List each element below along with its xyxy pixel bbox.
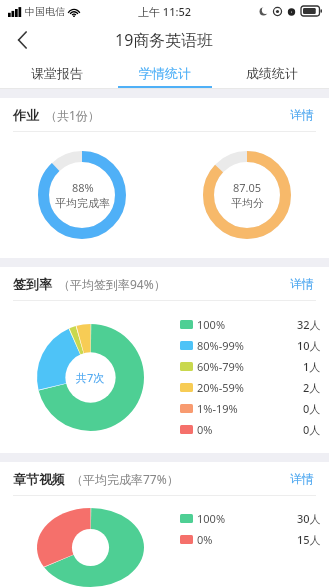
staticText: （共1份）	[45, 107, 100, 123]
staticText: 详情	[290, 276, 314, 291]
staticText: 课堂报告	[31, 65, 83, 81]
staticText: 0%	[197, 422, 213, 437]
staticText: 88%	[72, 180, 94, 195]
button[interactable]: 详情	[288, 272, 316, 295]
staticText: （平均完成率77%）	[71, 471, 179, 487]
staticText: 87.05	[233, 180, 262, 195]
staticText: 共7次	[76, 370, 105, 385]
staticText: 上午 11:52	[138, 4, 192, 19]
staticText: 中国电信	[25, 5, 65, 18]
staticText: 作业	[13, 107, 39, 123]
staticText: 30人	[297, 511, 321, 526]
staticText: 平均完成率	[55, 196, 110, 210]
button[interactable]: 学情统计	[115, 58, 215, 88]
button[interactable]: 详情	[288, 103, 316, 126]
staticText: 100%	[197, 511, 226, 526]
staticText: 20%-59%	[197, 380, 244, 395]
staticText: 0%	[197, 532, 213, 547]
staticText: 1%-19%	[197, 401, 238, 416]
staticText: 0人	[303, 401, 321, 416]
staticText: 签到率	[13, 276, 52, 292]
staticText: 详情	[290, 107, 314, 122]
button[interactable]: 详情	[288, 467, 316, 490]
staticText: 0人	[303, 422, 321, 437]
staticText: 32人	[297, 317, 321, 332]
staticText: 100%	[197, 317, 226, 332]
staticText: 10人	[297, 338, 321, 353]
staticText: 60%-79%	[197, 359, 244, 374]
button[interactable]: 成绩统计	[222, 58, 322, 88]
staticText: 成绩统计	[246, 65, 298, 81]
staticText: 2人	[303, 380, 321, 395]
staticText: 19商务英语班	[115, 29, 214, 51]
button[interactable]: 课堂报告	[7, 58, 107, 88]
staticText: 章节视频	[13, 471, 65, 487]
staticText: 详情	[290, 471, 314, 486]
staticText: （平均签到率94%）	[58, 276, 166, 292]
button[interactable]: Back	[0, 22, 44, 58]
staticText: 1人	[303, 359, 321, 374]
staticText: 平均分	[231, 196, 264, 210]
staticText: 15人	[297, 532, 321, 547]
staticText: 80%-99%	[197, 338, 244, 353]
staticText: 学情统计	[139, 65, 191, 81]
